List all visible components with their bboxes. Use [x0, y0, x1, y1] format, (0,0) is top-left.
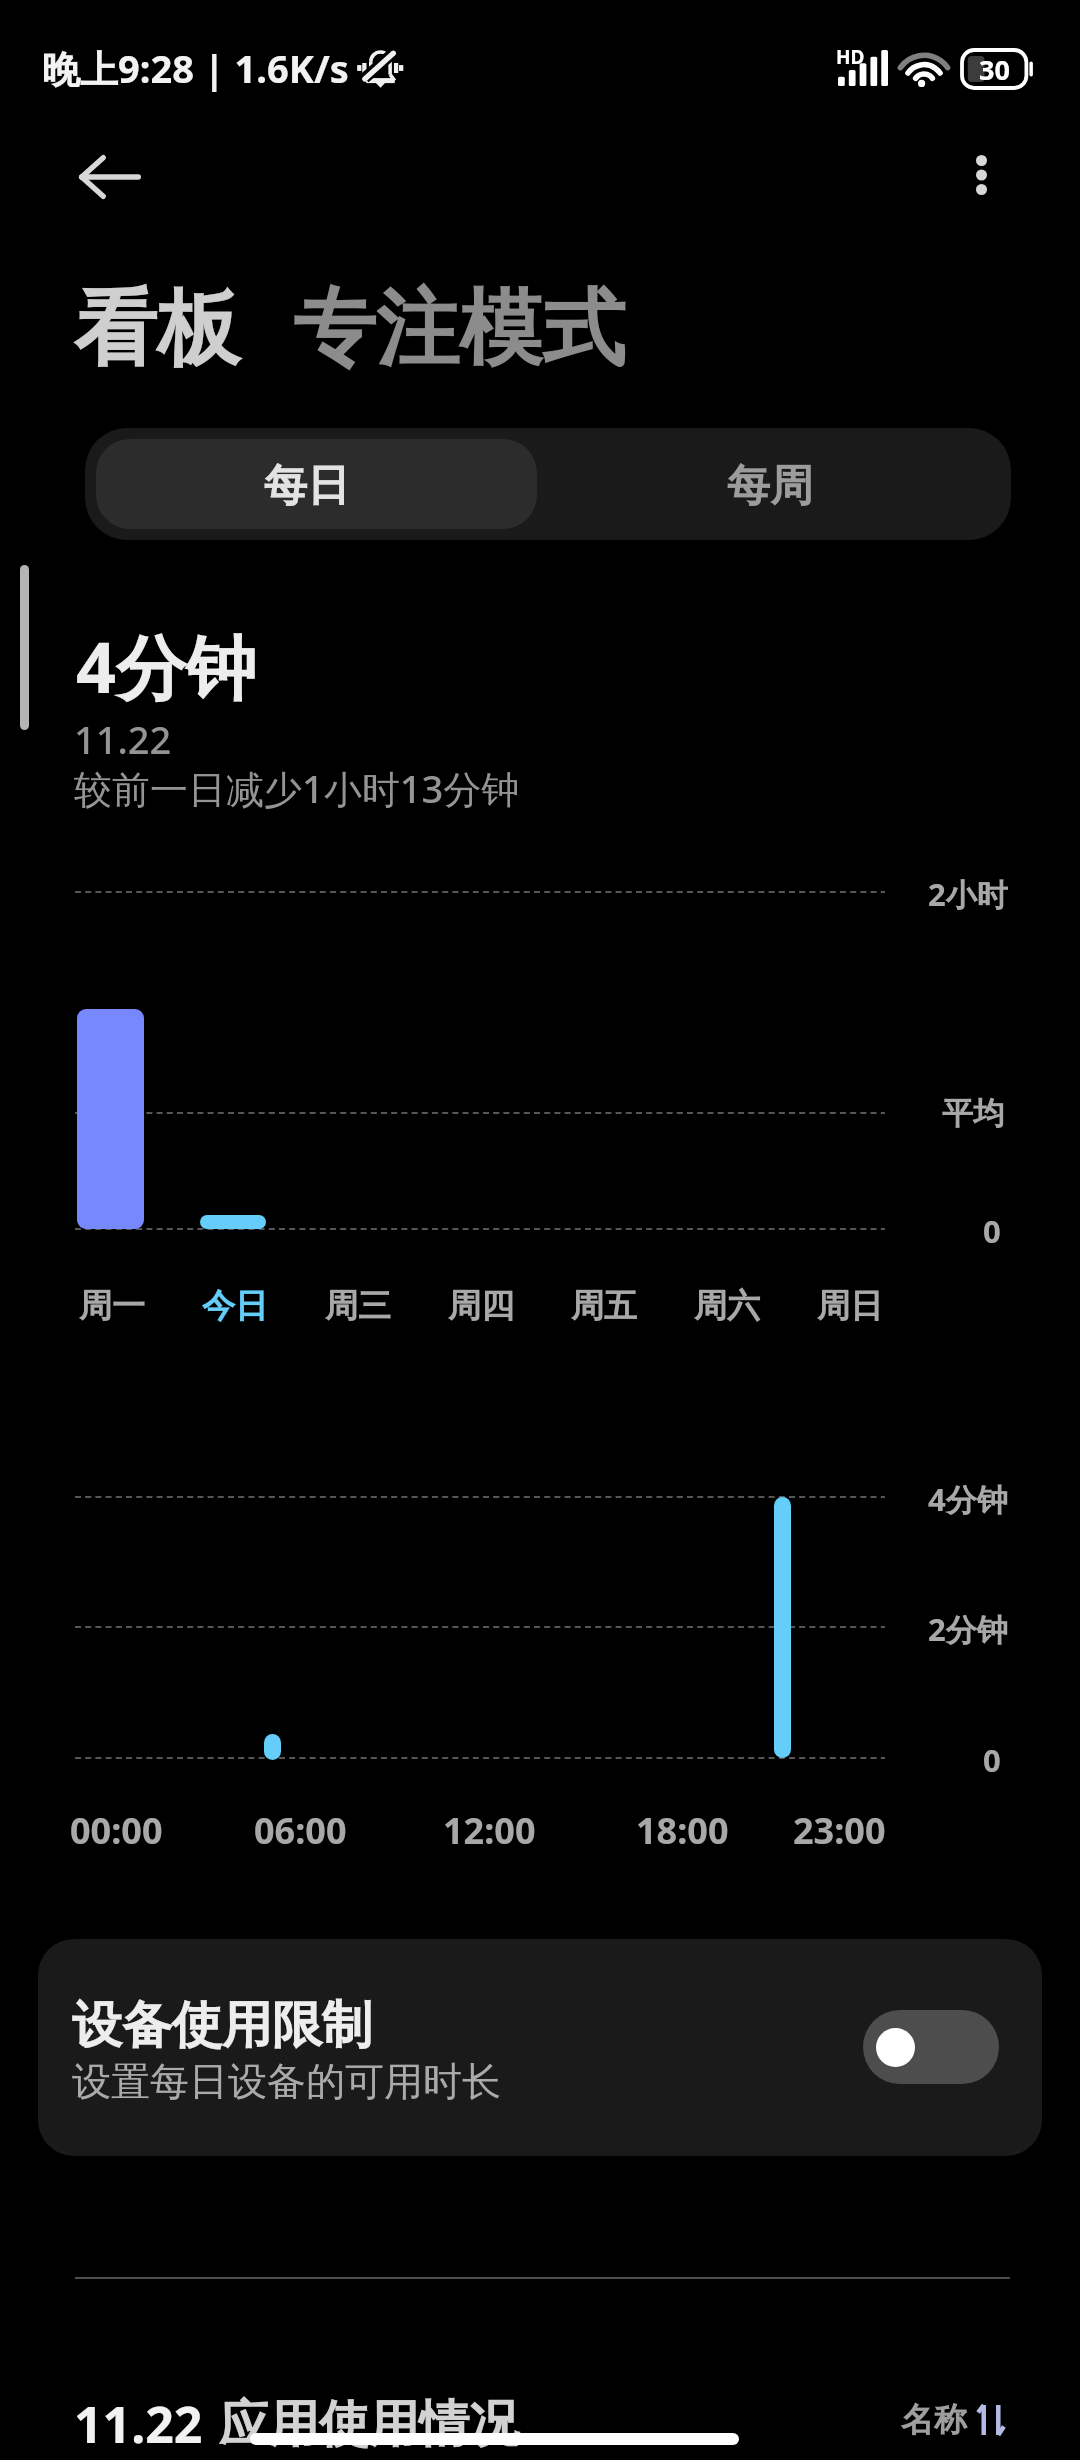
staticText: 11.22	[74, 713, 172, 765]
staticText: 周五	[571, 1285, 637, 1327]
staticText: 23:00	[793, 1806, 886, 1855]
staticText: 晚上9:28 | 1.6K/s	[42, 42, 349, 94]
staticText: 周六	[694, 1285, 760, 1327]
staticText: 每周	[727, 459, 813, 513]
staticText: 今日	[202, 1285, 268, 1327]
button[interactable]: 看板	[74, 277, 240, 382]
staticText: 专注模式	[293, 277, 625, 382]
button[interactable]: 周三	[294, 1285, 422, 1327]
button[interactable]: 周六	[663, 1285, 791, 1327]
staticText: 0	[983, 1739, 1001, 1781]
staticText: 2小时	[928, 873, 1008, 915]
button[interactable]: Toggle device usage limit	[863, 2010, 999, 2084]
staticText: 每日	[264, 459, 350, 513]
staticText: 12:00	[443, 1806, 536, 1855]
staticText: 周日	[817, 1285, 883, 1327]
staticText: 看板	[74, 277, 240, 382]
staticText: 设备使用限制	[72, 1994, 372, 2057]
staticText: HD	[836, 44, 865, 70]
staticText: 2分钟	[928, 1608, 1008, 1650]
staticText: 周一	[79, 1285, 145, 1327]
staticText: 平均	[942, 1094, 1004, 1133]
button[interactable]: 周五	[540, 1285, 668, 1327]
staticText: 18:00	[636, 1806, 729, 1855]
button[interactable]: Back	[54, 137, 166, 217]
button[interactable]: 每日	[96, 439, 537, 529]
button[interactable]: 专注模式	[293, 277, 625, 382]
staticText: 4分钟	[76, 618, 257, 714]
staticText: 11.22	[74, 2390, 203, 2458]
button[interactable]: 周一	[48, 1285, 176, 1327]
button[interactable]: 设备使用限制	[38, 1939, 1042, 2156]
button[interactable]: 周日	[786, 1285, 914, 1327]
staticText: 应用使用情况	[219, 2393, 519, 2456]
button[interactable]: 今日	[171, 1285, 299, 1327]
staticText: 0	[983, 1210, 1001, 1252]
button[interactable]: 名称	[901, 2399, 1005, 2441]
staticText: 30	[979, 51, 1010, 88]
staticText: 周三	[325, 1285, 391, 1327]
staticText: 名称	[901, 2399, 967, 2441]
staticText: 06:00	[254, 1806, 347, 1855]
button[interactable]: 每周	[548, 428, 1011, 540]
button[interactable]: More options	[946, 140, 1016, 210]
staticText: 周四	[448, 1285, 514, 1327]
staticText: 较前一日减少1小时13分钟	[74, 762, 520, 814]
staticText: 00:00	[70, 1806, 163, 1855]
button[interactable]: 周四	[417, 1285, 545, 1327]
staticText: 设置每日设备的可用时长	[72, 2057, 501, 2106]
staticText: 4分钟	[928, 1478, 1008, 1520]
